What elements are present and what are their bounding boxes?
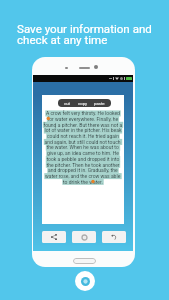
staticText: paste xyxy=(94,101,105,106)
button[interactable]: Settings xyxy=(72,231,96,243)
button[interactable]: Home xyxy=(73,258,96,264)
staticText: copy xyxy=(78,101,88,106)
button[interactable]: Next xyxy=(75,271,95,291)
staticText: cut xyxy=(64,101,71,106)
staticText: Save your information and xyxy=(17,22,152,36)
button[interactable]: Undo xyxy=(102,231,126,243)
staticText: check at any time xyxy=(17,33,108,47)
button[interactable]: cut xyxy=(64,101,71,106)
button[interactable]: Share xyxy=(42,231,66,243)
button[interactable]: paste xyxy=(94,101,105,106)
button[interactable]: copy xyxy=(78,101,88,106)
